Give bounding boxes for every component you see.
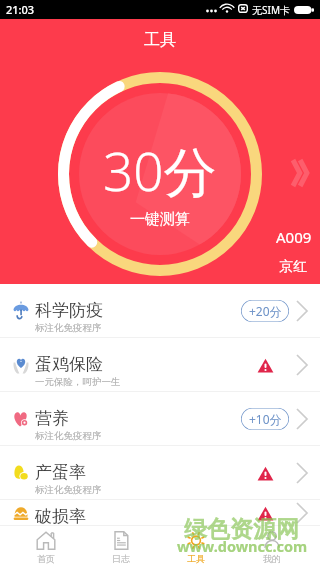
staticText: 我的 (263, 553, 281, 564)
staticText: 蛋鸡保险 (35, 354, 103, 375)
staticText: 无SIM卡 (252, 3, 290, 17)
button[interactable]: 我的 (234, 526, 310, 569)
staticText: 工具 (144, 30, 176, 50)
staticText: 破损率 (35, 506, 86, 527)
staticText: 标注化免疫程序 (35, 484, 102, 496)
staticText: 30分 (103, 134, 217, 206)
button[interactable]: 产蛋率 (0, 446, 320, 499)
staticText: 产蛋率 (35, 462, 86, 483)
staticText: 一键测算 (130, 210, 190, 229)
staticText: 日志 (112, 553, 130, 564)
staticText: www.downcc.com (177, 536, 308, 556)
staticText: 营养 (35, 408, 69, 429)
button[interactable]: 营养 (0, 392, 320, 445)
button[interactable]: 首页 (8, 526, 83, 569)
staticText: 工具 (187, 553, 205, 564)
staticText: 一元保险，呵护一生 (35, 376, 121, 388)
staticText: +10分 (249, 411, 282, 427)
staticText: 首页 (37, 553, 55, 564)
staticText: +20分 (249, 303, 282, 319)
button[interactable]: 一键测算 (58, 72, 262, 276)
button[interactable]: 破损率 (0, 500, 320, 525)
staticText: 标注化免疫程序 (35, 322, 102, 334)
button[interactable]: 日志 (83, 526, 158, 569)
button[interactable]: 科学防疫 (0, 284, 320, 337)
staticText: 21:03 (6, 2, 35, 17)
staticText: 绿色资源网 (184, 515, 299, 544)
staticText: A009 (276, 227, 312, 247)
staticText: 京红 (279, 258, 307, 276)
staticText: 科学防疫 (35, 300, 103, 321)
button[interactable]: 工具 (158, 526, 234, 569)
staticText: 标注化免疫程序 (35, 430, 102, 442)
button[interactable]: 蛋鸡保险 (0, 338, 320, 391)
